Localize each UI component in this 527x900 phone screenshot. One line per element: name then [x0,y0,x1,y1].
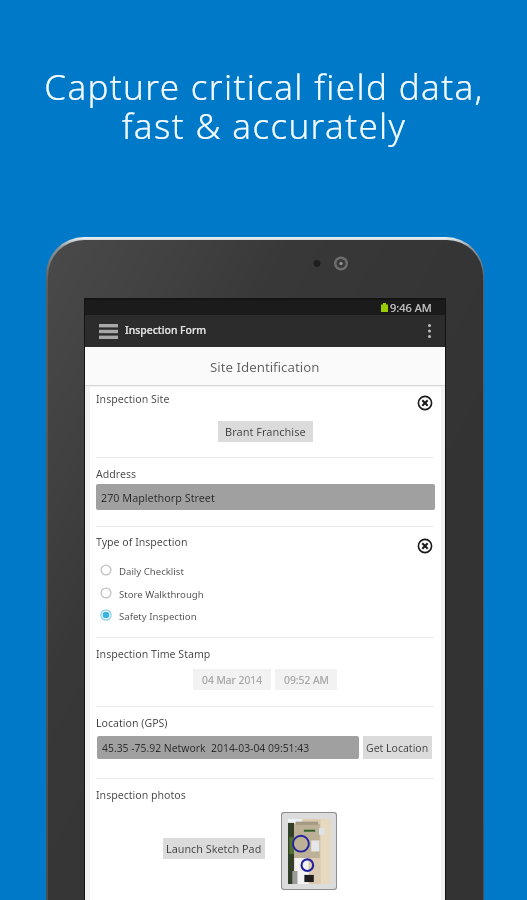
button[interactable]: Safety Inspection [90,604,441,626]
button[interactable]: Clear Inspection Site [416,394,434,412]
button[interactable]: Brant Franchise [218,421,313,442]
button[interactable]: Get Location [363,736,432,759]
staticText: Launch Sketch Pad [166,841,262,856]
staticText: Store Walkthrough [119,588,204,601]
staticText: Address [96,467,137,481]
button[interactable]: 04 Mar 2014 [193,669,271,690]
staticText: Brant Franchise [225,424,306,439]
staticText: 09:52 AM [284,673,329,687]
staticText: 04 Mar 2014 [202,673,263,687]
button[interactable]: 45.35 -75.92 Network 2014-03-04 09:51:43 [97,736,359,759]
staticText: Location (GPS) [96,716,168,730]
button[interactable]: Daily Checklist [90,559,441,581]
staticText: Site Identification [210,358,320,376]
staticText: 45.35 -75.92 Network 2014-03-04 09:51:43 [102,741,310,755]
staticText: Inspection Site [96,392,170,406]
button[interactable]: 09:52 AM [275,669,337,690]
button[interactable]: Launch Sketch Pad [163,838,265,859]
staticText: Type of Inspection [96,535,188,549]
staticText: Inspection Form [125,323,207,337]
staticText: 9:46 AM [390,300,432,315]
button[interactable]: Clear Type of Inspection [416,537,434,555]
staticText: Safety Inspection [119,610,197,623]
staticText: Daily Checklist [119,565,184,578]
button[interactable]: Navigation menu [99,324,118,339]
staticText: Capture critical field data, fast & accu… [44,63,484,150]
staticText: Get Location [366,741,429,755]
button[interactable]: 270 Maplethorp Street [96,484,435,510]
staticText: 270 Maplethorp Street [101,490,215,505]
button[interactable]: Store Walkthrough [90,582,441,604]
staticText: Inspection photos [96,788,186,802]
staticText: Inspection Time Stamp [96,647,211,661]
button[interactable]: Inspection photo [282,813,336,889]
button[interactable]: More options [413,315,445,347]
